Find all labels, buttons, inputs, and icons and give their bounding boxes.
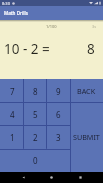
staticText: 8 <box>33 86 38 97</box>
staticText: 7 <box>10 86 15 97</box>
button[interactable]: 0 <box>0 149 70 172</box>
staticText: 4 <box>10 109 15 120</box>
staticText: Math Drills <box>4 10 28 16</box>
button[interactable]: Home <box>46 172 57 183</box>
button[interactable]: 1 <box>0 126 24 149</box>
staticText: 2 <box>33 132 38 143</box>
staticText: 0 <box>33 155 38 166</box>
button[interactable]: 4 <box>0 103 24 126</box>
staticText: 9 <box>56 86 61 97</box>
staticText: 1 <box>10 132 15 143</box>
staticText: SUBMIT <box>73 132 100 142</box>
button[interactable]: 3 <box>47 126 70 149</box>
staticText: 8:30 <box>2 1 10 6</box>
button[interactable]: Recent apps <box>75 172 86 183</box>
staticText: BACK <box>77 86 96 96</box>
staticText: 3 <box>56 132 61 143</box>
staticText: 3s <box>92 24 97 29</box>
button[interactable]: 6 <box>47 103 70 126</box>
staticText: 5 <box>33 109 38 120</box>
staticText: 1/100 <box>46 24 57 29</box>
staticText: 10 - 2 = <box>4 40 50 58</box>
staticText: 8 <box>87 40 95 58</box>
button[interactable]: 5 <box>24 103 47 126</box>
button[interactable]: SUBMIT <box>70 102 103 172</box>
button[interactable]: 2 <box>24 126 47 149</box>
button[interactable]: BACK <box>70 79 103 102</box>
button[interactable]: 9 <box>47 79 70 103</box>
button[interactable]: 8 <box>24 79 47 103</box>
button[interactable]: 7 <box>0 79 24 103</box>
staticText: 6 <box>56 109 61 120</box>
button[interactable]: Back <box>18 172 29 183</box>
